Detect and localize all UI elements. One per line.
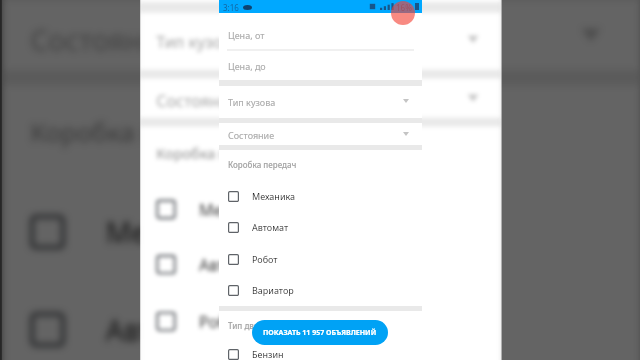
staticText: Вариатор xyxy=(252,284,294,296)
staticText: Автомат xyxy=(199,253,265,274)
staticText: 16% xyxy=(396,2,412,13)
button[interactable]: Состояние xyxy=(140,75,501,123)
staticText: Тип кузова xyxy=(228,96,276,108)
button[interactable]: Механика xyxy=(2,189,640,271)
staticText: Робот xyxy=(199,310,245,331)
staticText: Тип двигателя xyxy=(228,320,285,331)
button[interactable]: Автомат xyxy=(219,214,422,240)
button[interactable]: Состояние xyxy=(2,0,640,79)
button[interactable]: Робот xyxy=(140,297,501,344)
button[interactable]: Робот xyxy=(219,246,422,272)
button[interactable]: Механика xyxy=(219,183,422,209)
staticText: Цена, до xyxy=(228,60,266,72)
staticText: Механика xyxy=(199,198,277,219)
staticText: Коробка передач xyxy=(228,159,297,170)
staticText: Состояние xyxy=(30,19,178,57)
button[interactable]: Вариатор xyxy=(140,353,501,360)
staticText: 3:16 xyxy=(223,2,239,13)
other: Touch indicator xyxy=(391,1,415,25)
button[interactable]: Автомат xyxy=(2,287,640,360)
button[interactable]: Тип кузова xyxy=(140,16,501,64)
staticText: Механика xyxy=(252,190,296,202)
staticText: ПОКАЗАТЬ 11 957 ОБЪЯВЛЕНИЙ xyxy=(263,328,377,338)
button[interactable]: ПОКАЗАТЬ 11 957 ОБЪЯВЛЕНИЙ xyxy=(252,320,388,345)
button[interactable]: Бензин xyxy=(219,341,422,360)
button[interactable]: Вариатор xyxy=(219,277,422,303)
staticText: Состояние xyxy=(228,129,275,141)
staticText: Состояние xyxy=(156,89,240,111)
staticText: Тип кузова xyxy=(156,30,242,52)
staticText: Механика xyxy=(106,211,244,249)
button[interactable]: Механика xyxy=(140,185,501,232)
button[interactable]: Автомат xyxy=(140,240,501,287)
staticText: Бензин xyxy=(252,348,284,360)
button[interactable]: Состояние xyxy=(219,121,422,148)
staticText: Коробка передач xyxy=(156,143,279,162)
button[interactable]: Цена, от xyxy=(219,21,422,48)
button[interactable]: Тип кузова xyxy=(219,88,422,115)
staticText: Автомат xyxy=(106,309,222,347)
staticText: Робот xyxy=(252,253,278,265)
button[interactable]: Цена, до xyxy=(219,52,422,79)
staticText: Коробка передач xyxy=(30,114,248,148)
staticText: Цена, от xyxy=(228,29,265,41)
staticText: Автомат xyxy=(252,221,289,233)
